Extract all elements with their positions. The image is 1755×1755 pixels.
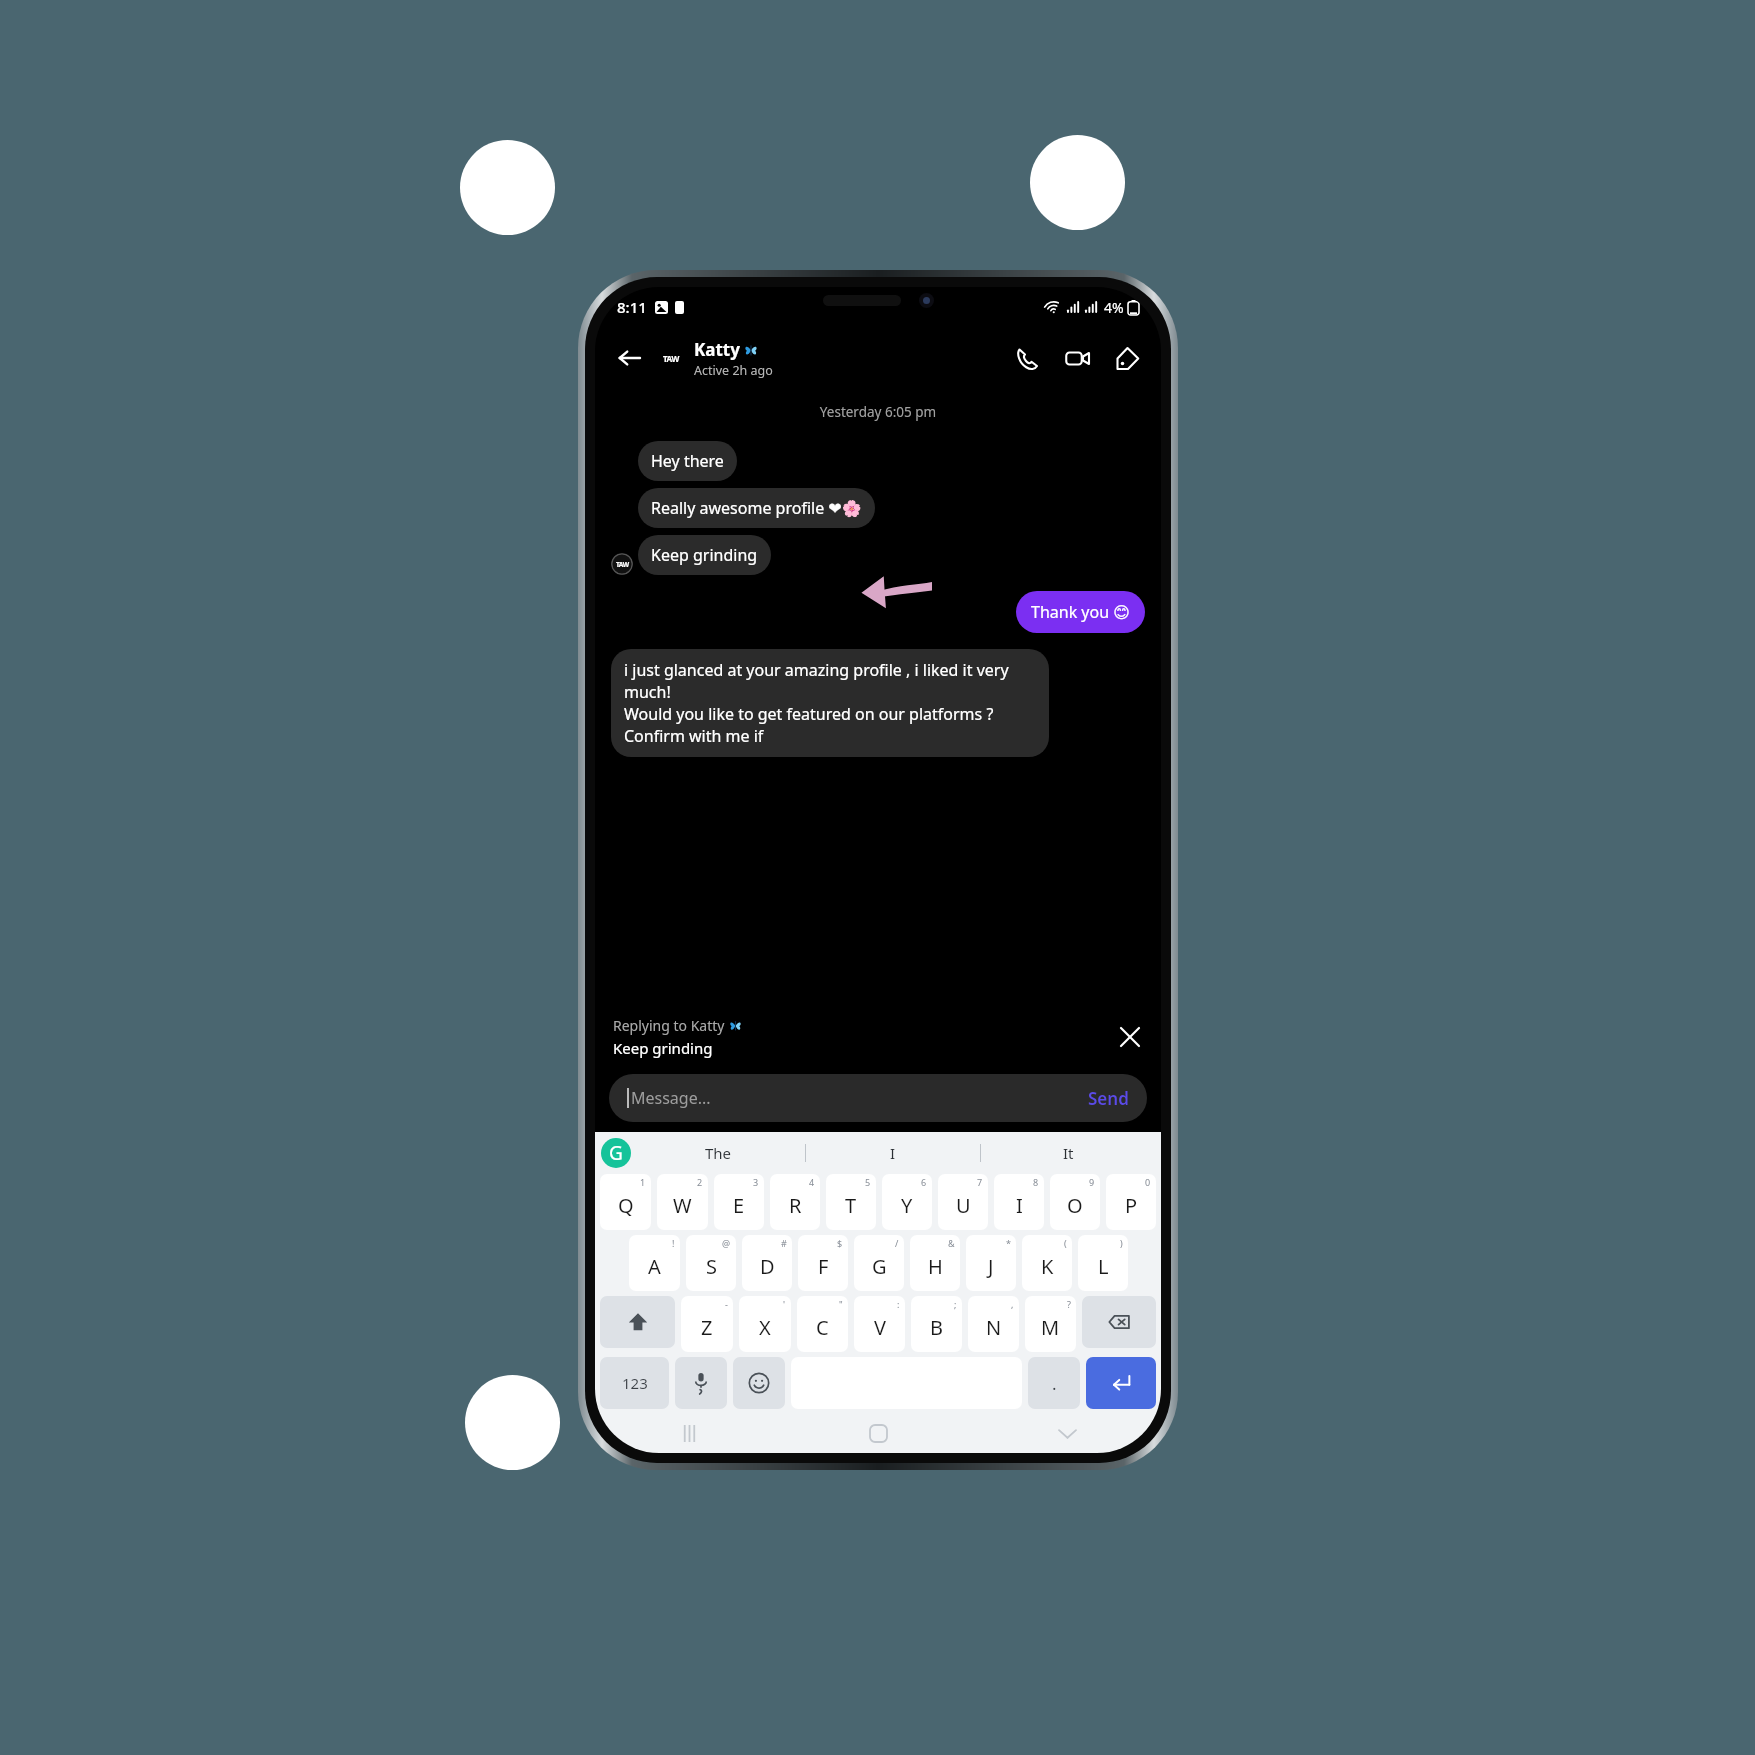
button[interactable]: Thank you 😊 [1016,591,1145,633]
staticText: P [1125,1192,1138,1219]
staticText: Message... [631,1087,711,1109]
button[interactable]: : [854,1296,905,1352]
button[interactable]: Call [1007,338,1047,378]
staticText: Keep grinding [613,1038,713,1058]
staticText: U [956,1192,971,1219]
staticText: B [930,1314,943,1341]
button[interactable]: Enter [1086,1357,1156,1409]
button[interactable]: Close reply [1113,1020,1147,1054]
staticText: Really awesome profile ❤️🌸 [651,497,862,519]
staticText: K [1041,1253,1054,1280]
button[interactable]: / [854,1235,904,1291]
button[interactable]: 8 [994,1174,1044,1230]
staticText: 9 [1089,1176,1095,1188]
button[interactable]: 4 [770,1174,820,1230]
button[interactable]: Really awesome profile ❤️🌸 [638,488,875,528]
staticText: Hey there [651,450,724,472]
button[interactable]: ) [1078,1235,1128,1291]
staticText: L [1098,1253,1109,1280]
button[interactable]: The [631,1132,805,1174]
staticText: 3 [753,1176,759,1188]
button[interactable]: 7 [938,1174,988,1230]
button[interactable]: # [742,1235,792,1291]
staticText: M [1041,1314,1060,1341]
button[interactable]: Backspace [1082,1296,1156,1348]
button[interactable]: Back [609,338,649,378]
staticText: 4 [809,1176,815,1188]
staticText: 6 [921,1176,927,1188]
button[interactable]: 9 [1050,1174,1100,1230]
staticText: T [845,1192,857,1219]
staticText: * [1006,1237,1011,1249]
button[interactable]: i just glanced at your amazing profile ,… [611,649,1049,757]
staticText: Thank you 😊 [1031,601,1130,623]
button[interactable]: 3 [714,1174,764,1230]
button[interactable]: $ [798,1235,848,1291]
staticText: X [759,1314,771,1341]
staticText: ! [672,1237,675,1249]
button[interactable]: @ [686,1235,736,1291]
staticText: TAW [616,560,629,569]
button[interactable]: ( [1022,1235,1072,1291]
button[interactable]: Video call [1057,338,1097,378]
button[interactable]: It [981,1132,1155,1174]
staticText: 123 [622,1373,648,1393]
button[interactable]: 0 [1106,1174,1156,1230]
staticText: Active 2h ago [694,362,773,379]
staticText: D [760,1253,775,1280]
button[interactable]: Back [1045,1413,1089,1453]
staticText: R [789,1192,802,1219]
staticText: ) [1120,1237,1123,1249]
staticText: ' [783,1298,786,1310]
staticText: ; [954,1298,957,1310]
staticText: G [872,1253,887,1280]
button[interactable]: 123 [600,1357,669,1409]
staticText: F [818,1253,829,1280]
staticText: It [1063,1143,1074,1163]
button[interactable]: Recents [667,1413,711,1453]
button[interactable]: ! [629,1235,680,1291]
staticText: i just glanced at your amazing profile ,… [624,659,1036,747]
button[interactable]: " [797,1296,848,1352]
button[interactable]: 6 [882,1174,932,1230]
button[interactable]: Grammarly [601,1138,631,1168]
button[interactable]: ; [911,1296,962,1352]
staticText: S [706,1253,717,1280]
staticText: A [648,1253,661,1280]
button[interactable]: . [1028,1357,1080,1409]
staticText: Send [1088,1087,1129,1110]
button[interactable]: 2 [657,1174,708,1230]
button[interactable]: Shift [600,1296,675,1348]
button[interactable]: 1 [600,1174,651,1230]
button[interactable]: - [681,1296,733,1352]
button[interactable]: Tag [1107,338,1147,378]
staticText: O [1067,1192,1083,1219]
staticText: - [725,1298,728,1310]
staticText: 2 [697,1176,703,1188]
button[interactable]: I [806,1132,980,1174]
button[interactable]: Message... [609,1074,1147,1122]
staticText: # [781,1237,787,1249]
button[interactable]: ' [739,1296,791,1352]
button[interactable]: Keep grinding [638,535,771,575]
staticText: W [673,1192,692,1219]
staticText: G [609,1140,623,1166]
staticText: Katty [694,338,740,361]
staticText: , [1011,1298,1014,1310]
button[interactable]: * [966,1235,1016,1291]
button[interactable]: ? [1025,1296,1076,1352]
staticText: Keep grinding [651,544,758,566]
button[interactable]: , [968,1296,1019,1352]
staticText: Yesterday 6:05 pm [611,403,1145,421]
button[interactable]: 5 [826,1174,876,1230]
staticText: ? [1067,1298,1071,1310]
button[interactable]: Emoji [733,1357,785,1409]
staticText: 0 [1145,1176,1151,1188]
staticText: Replying to Katty [613,1016,725,1035]
button[interactable]: Home [856,1413,900,1453]
button[interactable]: Hey there [638,441,737,481]
button[interactable]: Voice input [675,1357,727,1409]
staticText: : [897,1298,900,1310]
button[interactable]: & [910,1235,960,1291]
